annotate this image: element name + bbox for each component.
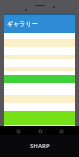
button[interactable]: ギャラリー — [4, 15, 75, 33]
button[interactable]: Home — [37, 128, 43, 134]
button[interactable]: Back — [15, 128, 21, 134]
staticText: ギャラリー — [7, 20, 38, 28]
staticText: SHARP — [30, 142, 50, 150]
button[interactable]: Recents — [58, 128, 64, 134]
